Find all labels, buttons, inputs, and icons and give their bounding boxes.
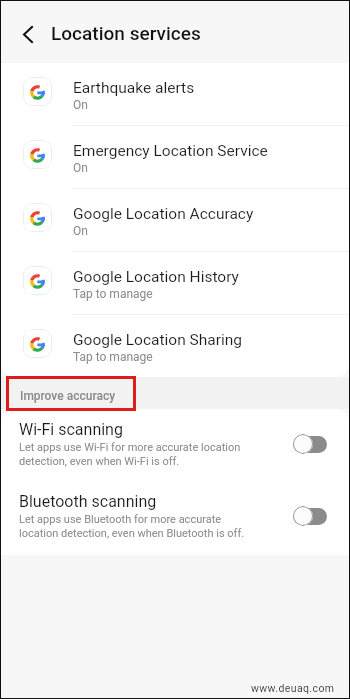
staticText: Let apps use Bluetooth for more accurate… <box>19 513 245 539</box>
staticText: On <box>73 224 88 238</box>
staticText: Tap to manage <box>73 350 153 364</box>
button[interactable]: Earthquake alerts <box>1 63 349 126</box>
staticText: www.deuaq.com <box>251 682 335 694</box>
staticText: Google Location History <box>73 268 239 286</box>
staticText: Bluetooth scanning <box>19 492 157 511</box>
staticText: On <box>73 98 88 112</box>
staticText: Location services <box>51 22 201 44</box>
staticText: Earthquake alerts <box>73 79 195 97</box>
button[interactable]: Google Location Accuracy <box>1 189 349 252</box>
staticText: Google Location Sharing <box>73 331 243 349</box>
button[interactable]: Wi-Fi scanning <box>1 409 349 481</box>
staticText: Google Location Accuracy <box>73 205 254 223</box>
staticText: Emergency Location Service <box>73 142 268 160</box>
staticText: Let apps use Wi-Fi for more accurate loc… <box>19 441 241 467</box>
staticText: On <box>73 161 88 175</box>
button[interactable]: Google Location Sharing <box>1 315 349 377</box>
staticText: Wi-Fi scanning <box>19 420 123 439</box>
button[interactable]: Back <box>1 8 49 56</box>
button[interactable]: Emergency Location Service <box>1 126 349 189</box>
staticText: Tap to manage <box>73 287 153 301</box>
button[interactable]: Bluetooth scanning <box>1 481 349 555</box>
staticText: Improve accuracy <box>20 389 116 403</box>
button[interactable]: Google Location History <box>1 252 349 315</box>
